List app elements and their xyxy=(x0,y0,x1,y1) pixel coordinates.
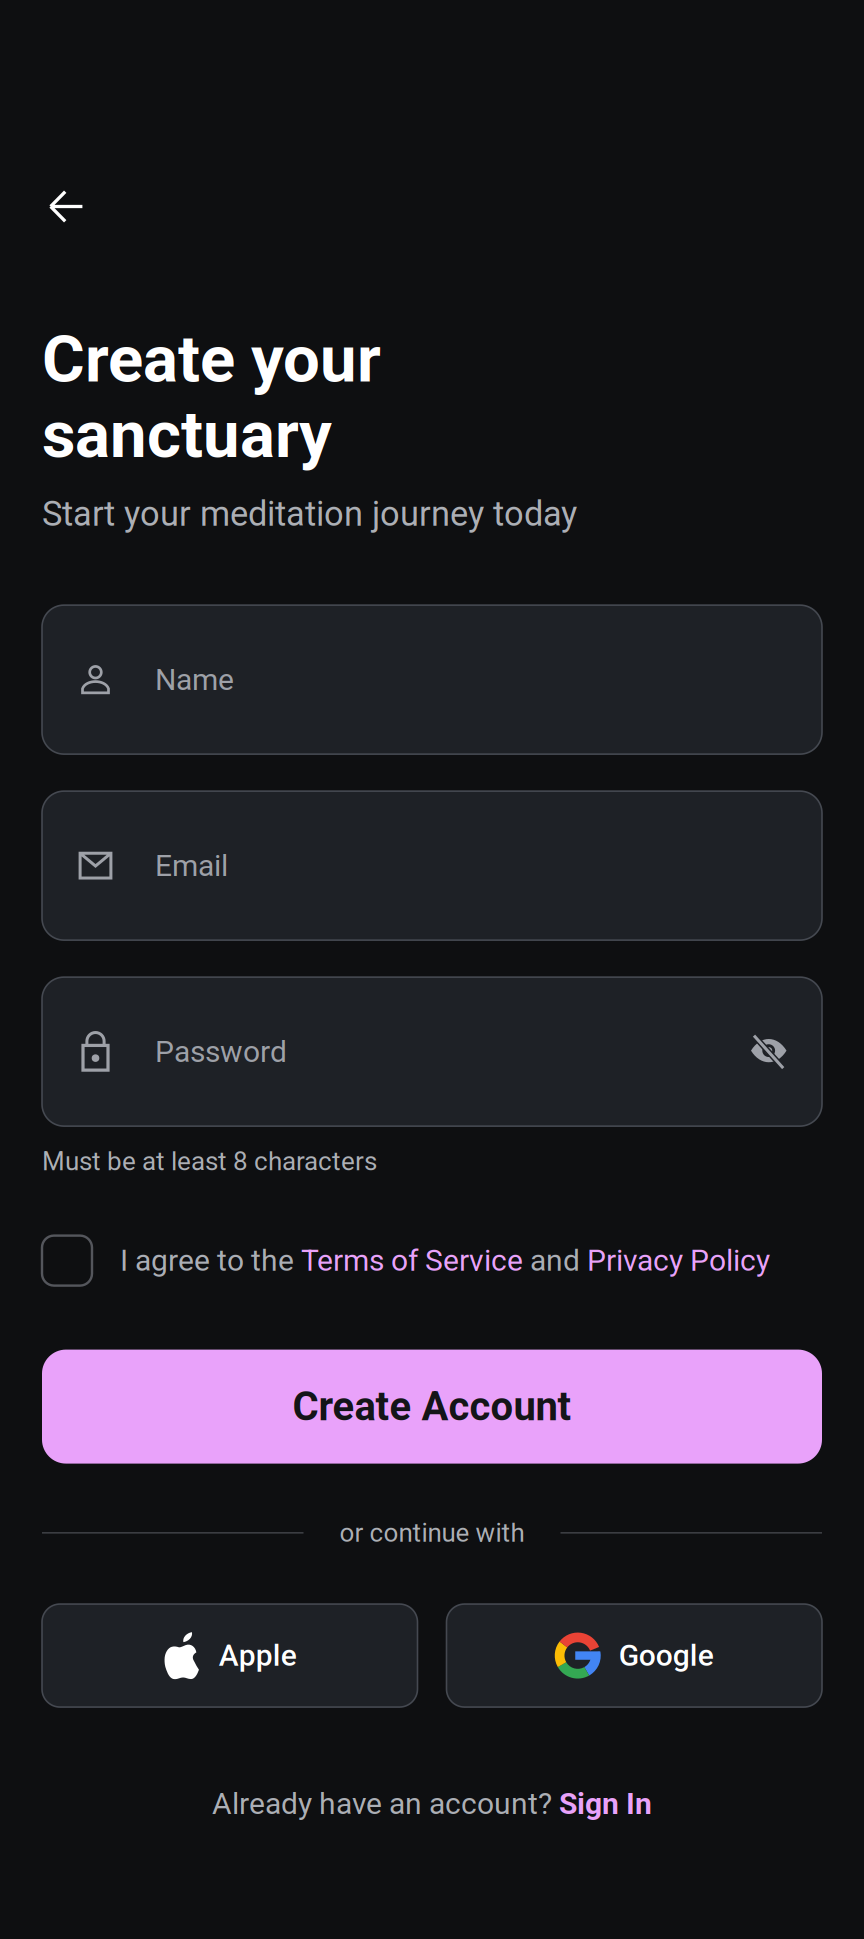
button[interactable]: Create Account xyxy=(42,1350,822,1464)
staticText: Must be at least 8 characters xyxy=(42,1146,377,1177)
button[interactable]: Google xyxy=(446,1604,822,1707)
staticText: Apple xyxy=(219,1638,297,1673)
button[interactable]: I agree to the xyxy=(42,1177,822,1286)
staticText: Google xyxy=(619,1638,714,1673)
staticText: Sign In xyxy=(559,1786,652,1821)
staticText: Already have an account? xyxy=(212,1786,559,1821)
staticText: Email xyxy=(155,848,228,883)
staticText: and xyxy=(523,1243,587,1278)
staticText: Name xyxy=(155,662,234,697)
staticText: Create Account xyxy=(292,1383,571,1430)
staticText: Privacy Policy xyxy=(587,1243,770,1278)
button[interactable]: Back xyxy=(0,190,84,223)
staticText: sanctuary xyxy=(42,396,332,473)
staticText: Create your xyxy=(42,321,381,397)
staticText: or continue with xyxy=(339,1518,524,1548)
staticText: Password xyxy=(155,1034,287,1069)
staticText: Terms of Service xyxy=(301,1243,523,1278)
staticText: Start your meditation journey today xyxy=(42,494,577,534)
staticText: I agree to the xyxy=(120,1243,301,1278)
button[interactable]: Already have an account? xyxy=(42,1707,822,1821)
button[interactable]: Apple xyxy=(42,1604,417,1707)
